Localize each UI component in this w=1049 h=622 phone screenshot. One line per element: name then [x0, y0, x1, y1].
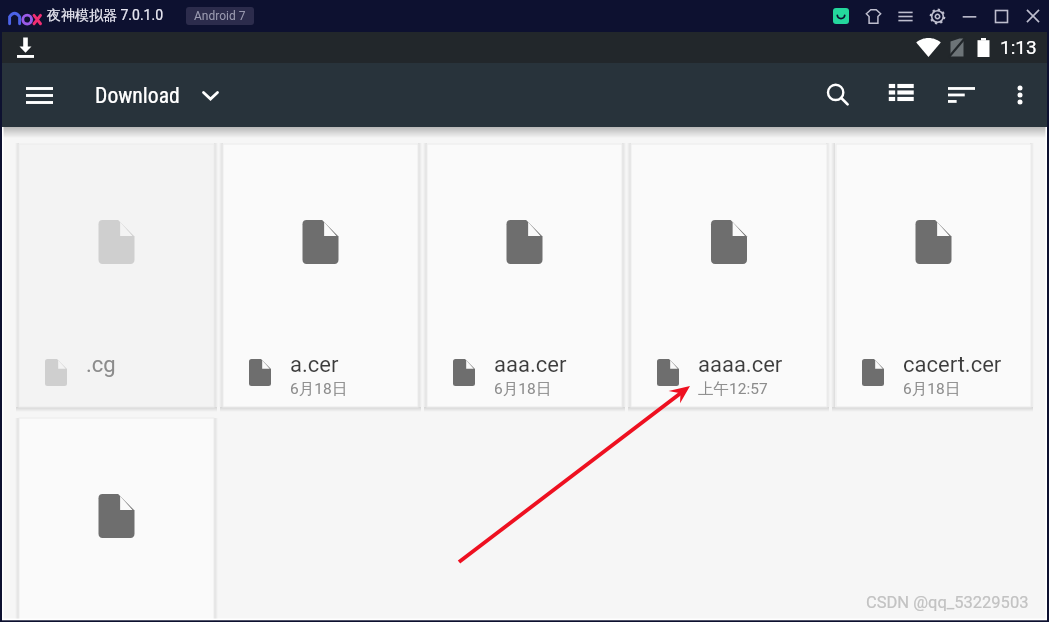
- staticText: aaaa.cer: [698, 352, 783, 378]
- button[interactable]: cacert.cer: [836, 144, 1031, 407]
- staticText: 上午12:57: [698, 379, 768, 399]
- button[interactable]: Multi instance: [889, 3, 921, 29]
- button[interactable]: .cg: [19, 144, 214, 407]
- button[interactable]: Grid view: [870, 63, 932, 127]
- staticText: 6月18日: [494, 379, 552, 399]
- staticText: Download: [95, 83, 180, 108]
- staticText: a.cer: [290, 352, 339, 378]
- staticText: 1:13: [1000, 36, 1037, 58]
- staticText: 6月18日: [903, 379, 961, 399]
- button[interactable]: Maximize: [985, 3, 1017, 29]
- button[interactable]: Sort: [932, 63, 990, 127]
- staticText: CSDN @qq_53229503: [866, 593, 1029, 612]
- button[interactable]: Navigation drawer: [21, 77, 57, 113]
- staticText: .cg: [86, 352, 116, 378]
- button[interactable]: Close: [1017, 3, 1049, 29]
- staticText: 6月18日: [290, 379, 348, 399]
- button[interactable]: a.cer: [223, 144, 418, 407]
- button[interactable]: Search: [806, 63, 870, 127]
- button[interactable]: Minimize: [953, 3, 985, 29]
- button[interactable]: Themes: [857, 3, 889, 29]
- staticText: Android 7: [194, 9, 246, 23]
- staticText: 夜神模拟器 7.0.1.0: [47, 7, 164, 25]
- button[interactable]: aaa.cer: [427, 144, 622, 407]
- button[interactable]: Settings: [921, 3, 953, 29]
- button[interactable]: More options: [990, 63, 1049, 127]
- staticText: aaa.cer: [494, 352, 567, 378]
- button[interactable]: Download: [95, 83, 219, 108]
- button[interactable]: [19, 418, 214, 622]
- staticText: cacert.cer: [903, 352, 1002, 378]
- button[interactable]: Store: [833, 8, 849, 24]
- button[interactable]: aaaa.cer: [631, 144, 827, 407]
